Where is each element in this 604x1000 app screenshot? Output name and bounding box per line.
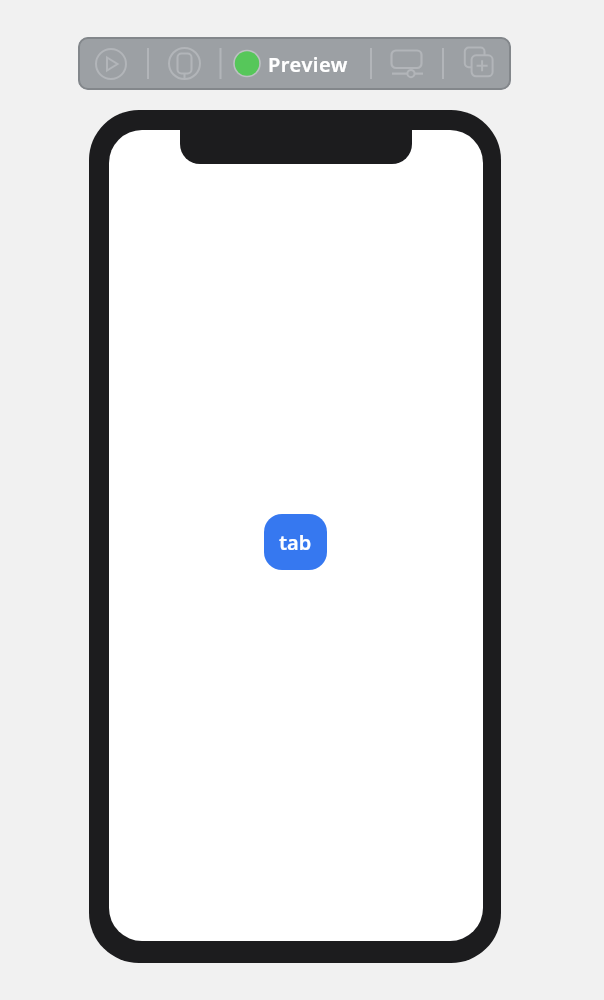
button[interactable]: tab [264, 514, 327, 570]
staticText: tab [279, 529, 312, 556]
staticText: Preview [268, 51, 348, 78]
